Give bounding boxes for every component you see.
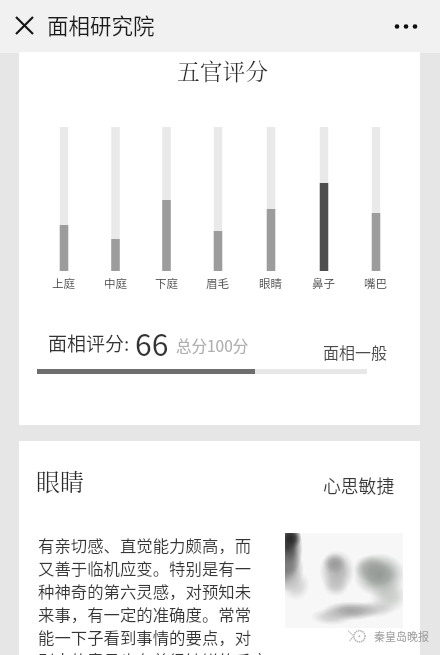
button[interactable]: 五官评分 (19, 52, 420, 425)
staticText: 秦皇岛晚报 (374, 628, 429, 644)
staticText: 别人的意见也有着很敏锐的反应。 (38, 648, 408, 655)
staticText: 鼻子 (312, 275, 336, 292)
staticText: 中庭 (104, 275, 128, 292)
staticText: 上庭 (52, 275, 76, 292)
staticText: 嘴巴 (364, 275, 388, 292)
staticText: 66 (135, 321, 169, 364)
staticText: 面相评分: (48, 329, 130, 357)
button[interactable]: Close (12, 13, 37, 38)
staticText: 面相一般 (323, 340, 388, 363)
staticText: 五官评分 (22, 54, 423, 87)
staticText: 有亲切感、直觉能力颇高，而又善于临机应变。特别是有一种神奇的第六灵感，对预知未来… (38, 533, 260, 649)
staticText: 眉毛 (206, 275, 230, 292)
staticText: 下庭 (155, 275, 179, 292)
staticText: 眼睛 (259, 275, 283, 292)
staticText: 面相研究院 (47, 9, 155, 40)
button[interactable]: 眼睛 (19, 441, 420, 655)
staticText: 眼睛 (36, 463, 84, 497)
staticText: 总分100分 (176, 334, 249, 356)
staticText: 心思敏捷 (323, 472, 395, 498)
button[interactable]: More options (392, 13, 419, 40)
